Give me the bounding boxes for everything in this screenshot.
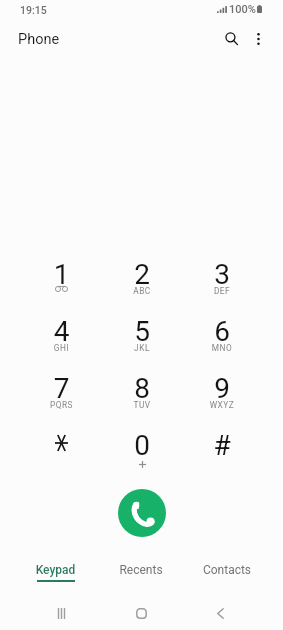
button[interactable]: 7 [21, 369, 102, 426]
button[interactable]: 6 [182, 312, 262, 369]
staticText: 100% [229, 3, 256, 16]
staticText: 2 [102, 258, 182, 291]
staticText: TUV [102, 400, 182, 410]
button[interactable]: Home [124, 596, 158, 630]
button[interactable]: Keypad [13, 553, 98, 589]
staticText: Recents [98, 563, 184, 577]
staticText: GHI [21, 343, 102, 353]
staticText: 0 [102, 429, 182, 462]
button[interactable]: 9 [182, 369, 262, 426]
staticText: 4 [21, 315, 102, 348]
button[interactable]: Back [203, 596, 237, 630]
button[interactable]: 5 [102, 312, 182, 369]
staticText: Contacts [184, 563, 270, 577]
staticText: DEF [182, 286, 262, 296]
button[interactable]: More options [244, 24, 273, 53]
staticText: 9 [182, 372, 262, 405]
staticText: # [182, 429, 262, 462]
button[interactable]: 0 [102, 426, 182, 483]
button[interactable]: # [182, 426, 262, 483]
staticText: ABC [102, 286, 182, 296]
staticText: 3 [182, 258, 262, 291]
staticText: 8 [102, 372, 182, 405]
button[interactable]: 4 [21, 312, 102, 369]
staticText: Keypad [13, 563, 98, 577]
staticText: JKL [102, 343, 182, 353]
button[interactable]: 1 [21, 255, 102, 312]
staticText: 7 [21, 372, 102, 405]
staticText: MNO [182, 343, 262, 353]
staticText: 5 [102, 315, 182, 348]
button[interactable]: Recents [98, 553, 184, 589]
button[interactable]: Recent apps [44, 596, 78, 630]
staticText: PQRS [21, 400, 102, 410]
button[interactable]: Call [118, 489, 166, 537]
button[interactable]: 3 [182, 255, 262, 312]
staticText: 19:15 [20, 4, 47, 16]
button[interactable] [21, 426, 102, 483]
button[interactable]: Search [217, 24, 246, 53]
button[interactable]: Contacts [184, 553, 270, 589]
staticText: 6 [182, 315, 262, 348]
staticText: 1 [21, 258, 102, 291]
staticText: WXYZ [182, 400, 262, 410]
staticText: Phone [18, 31, 60, 48]
button[interactable]: 2 [102, 255, 182, 312]
button[interactable]: 8 [102, 369, 182, 426]
